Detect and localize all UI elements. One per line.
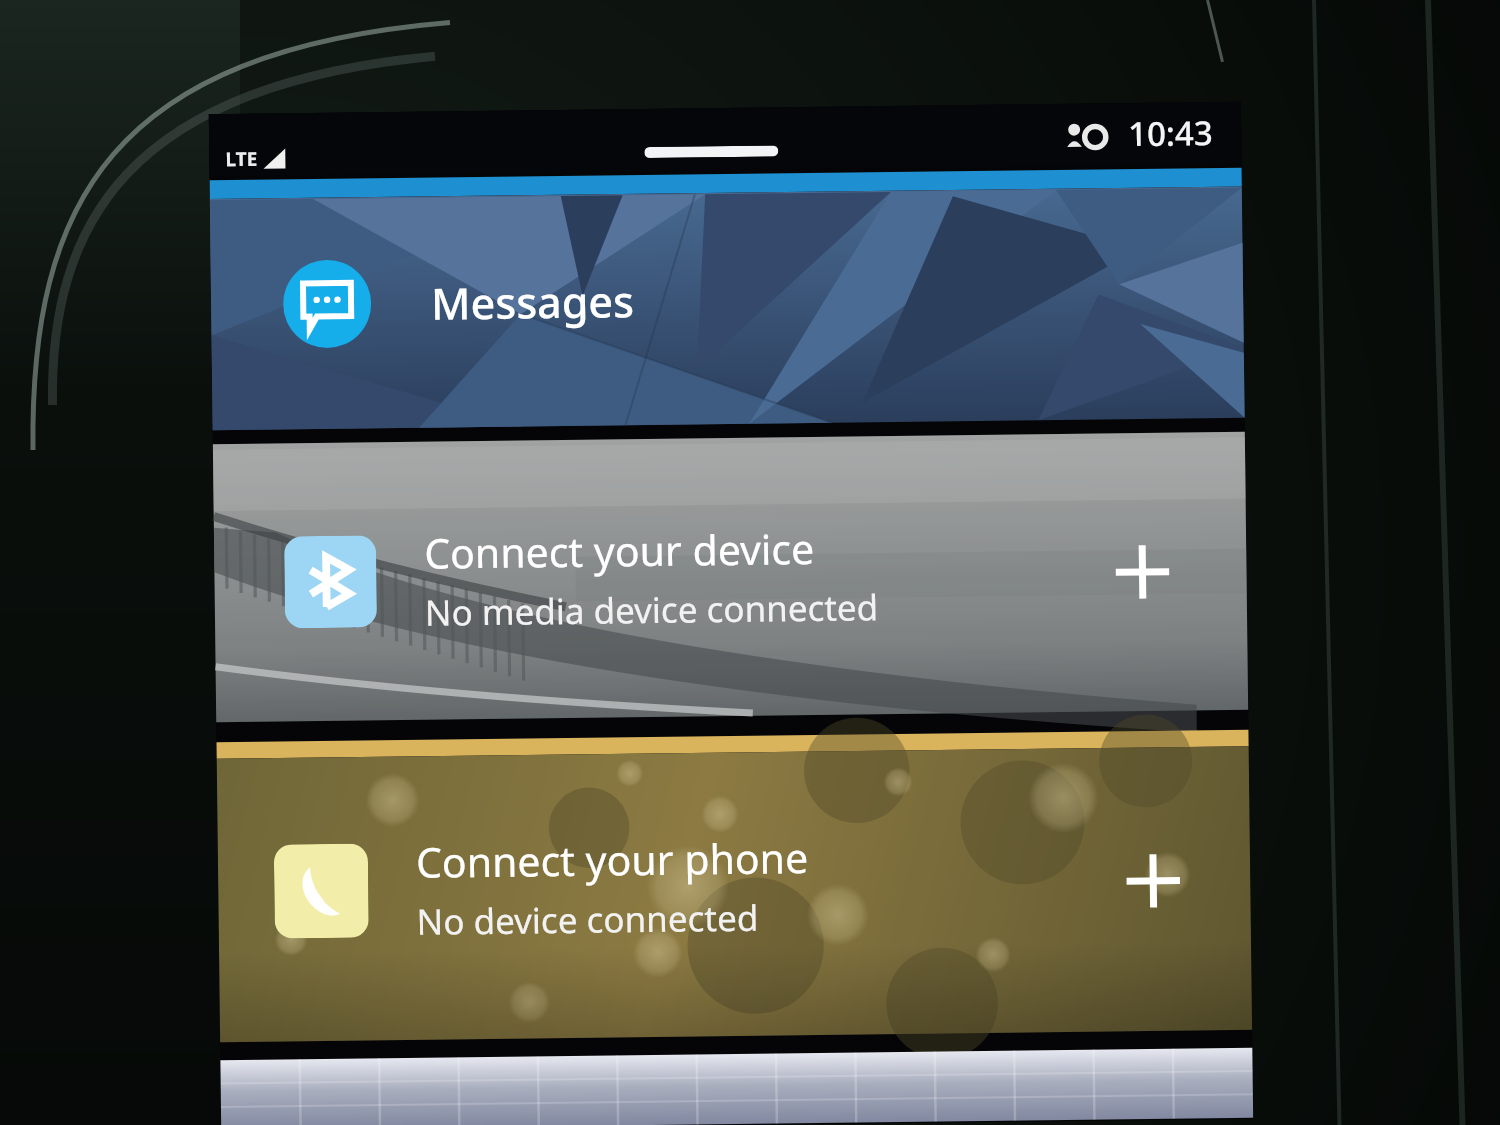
staticText: No device connected	[416, 894, 759, 946]
staticText: Messages	[431, 271, 634, 333]
button[interactable]: Messages	[210, 168, 1245, 430]
button[interactable]: Add media device	[1096, 525, 1189, 618]
button[interactable]: Connect your device	[213, 432, 1248, 722]
staticText: Connect your phone	[416, 829, 809, 890]
staticText: 10:43	[1128, 110, 1213, 156]
staticText: No media device connected	[425, 583, 879, 637]
button[interactable]: Add phone	[1106, 833, 1201, 928]
staticText: LTE	[225, 146, 257, 172]
button[interactable]: Connect your phone	[216, 730, 1252, 1042]
button[interactable]	[220, 1048, 1253, 1125]
staticText: Connect your device	[424, 520, 816, 581]
